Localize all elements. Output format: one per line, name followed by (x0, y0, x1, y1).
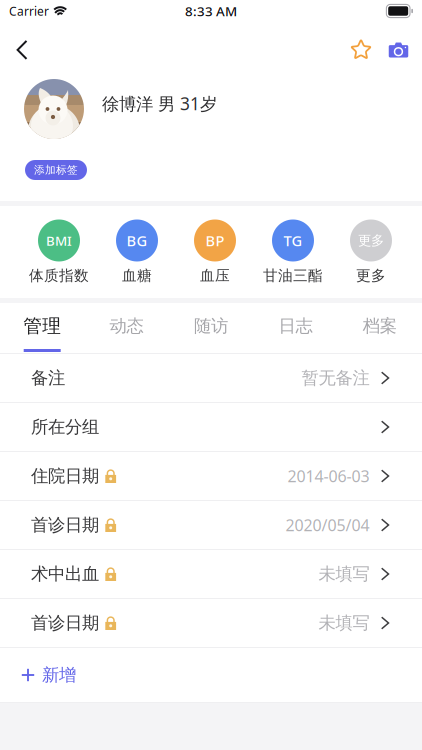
staticText: 甘油三酯 (263, 266, 323, 284)
button[interactable]: 随访 (169, 303, 253, 353)
staticText: 首诊日期 (31, 514, 99, 536)
staticText: TG (283, 231, 302, 250)
staticText: 徐博洋 男 31岁 (102, 92, 217, 115)
button[interactable]: 档案 (338, 303, 422, 353)
staticText: 2014-06-03 (287, 465, 369, 487)
staticText: 术中出血 (31, 563, 99, 585)
staticText: BMI (46, 232, 72, 249)
button[interactable]: BMI (20, 219, 98, 284)
staticText: BG (126, 231, 147, 250)
button[interactable]: 新增 (0, 648, 422, 703)
button[interactable]: 住院日期 (0, 452, 422, 501)
staticText: 8:33 AM (185, 2, 237, 20)
button[interactable]: Back (5, 22, 39, 64)
button[interactable]: 备注 (0, 354, 422, 403)
button[interactable]: 所在分组 (0, 403, 422, 452)
button[interactable]: 管理 (0, 303, 84, 353)
staticText: BP (205, 231, 224, 250)
staticText: 随访 (194, 315, 228, 337)
button[interactable]: 添加标签 (25, 160, 87, 180)
staticText: 暂无备注 (301, 367, 369, 389)
staticText: 首诊日期 (31, 612, 99, 634)
staticText: 体质指数 (29, 266, 89, 284)
staticText: 日志 (278, 315, 312, 337)
staticText: 血糖 (122, 266, 152, 284)
button[interactable]: 首诊日期 (0, 501, 422, 550)
staticText: 未填写 (318, 612, 369, 634)
staticText: Carrier (9, 3, 49, 19)
button[interactable]: BP (176, 219, 254, 284)
button[interactable]: 术中出血 (0, 550, 422, 599)
staticText: 未填写 (318, 563, 369, 585)
button[interactable]: 首诊日期 (0, 599, 422, 648)
button[interactable]: Camera (381, 22, 416, 64)
staticText: 新增 (42, 664, 76, 686)
button[interactable]: 动态 (84, 303, 169, 353)
staticText: 血压 (200, 266, 230, 284)
staticText: 档案 (363, 315, 397, 337)
staticText: 管理 (23, 314, 61, 337)
staticText: 更多 (356, 266, 386, 284)
staticText: 更多 (358, 232, 384, 249)
staticText: 添加标签 (34, 163, 78, 176)
button[interactable]: Favorite (342, 22, 381, 64)
staticText: 动态 (110, 315, 144, 337)
staticText: 2020/05/04 (285, 514, 369, 536)
button[interactable]: 更多 (332, 219, 410, 284)
button[interactable]: BG (98, 219, 176, 284)
staticText: 住院日期 (31, 465, 99, 487)
button[interactable]: 日志 (253, 303, 338, 353)
button[interactable]: TG (254, 219, 332, 284)
staticText: 备注 (31, 367, 65, 389)
staticText: 所在分组 (31, 416, 99, 438)
